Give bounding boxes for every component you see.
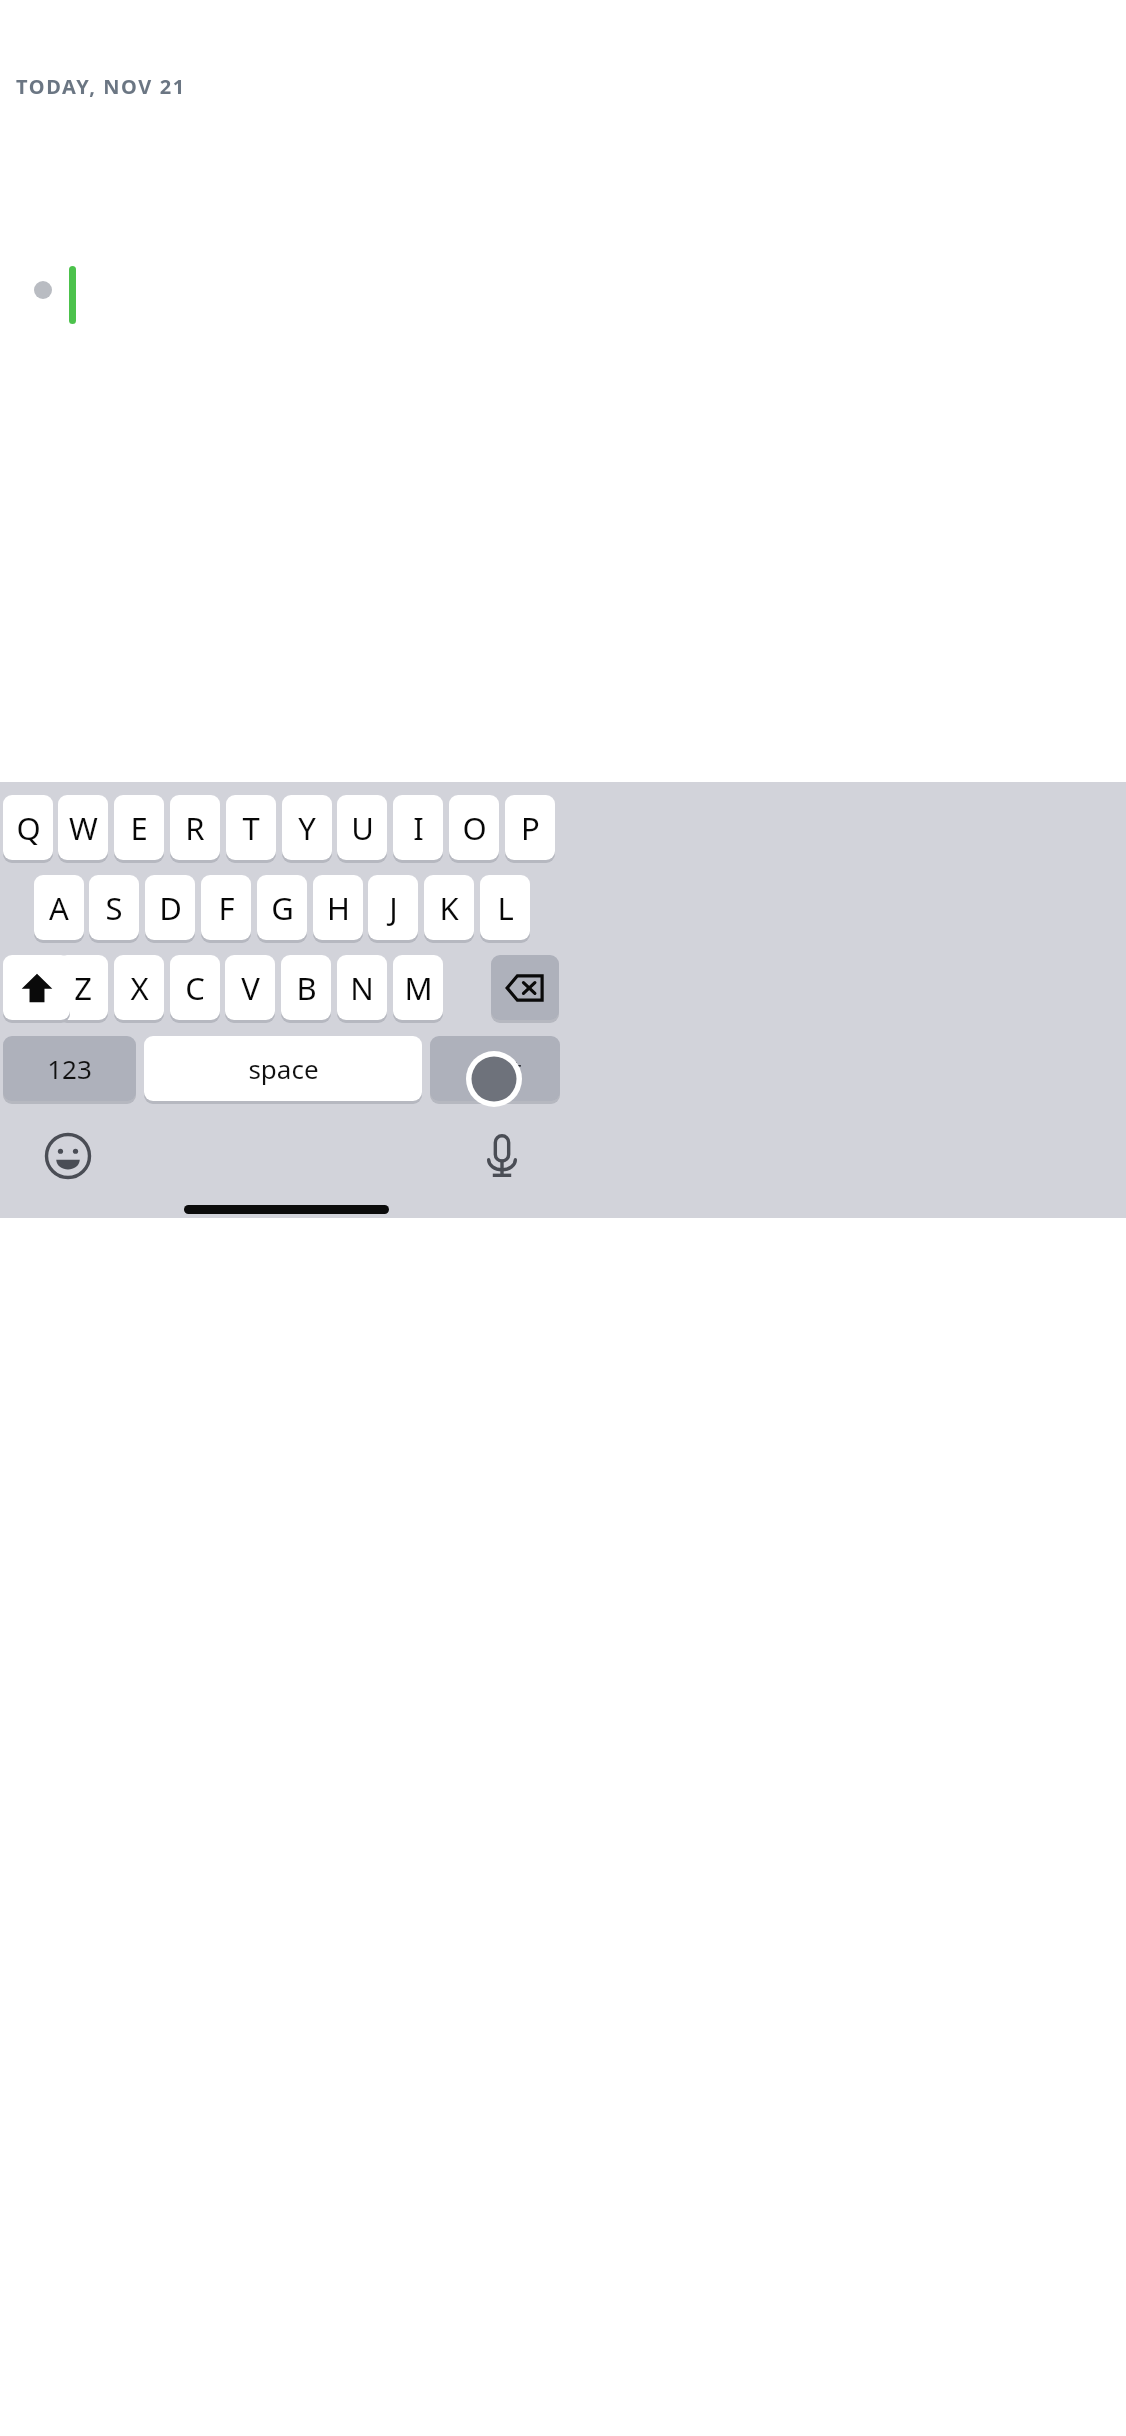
button[interactable]: C [170, 955, 220, 1020]
staticText: P [521, 807, 540, 849]
staticText: N [350, 967, 374, 1009]
button[interactable]: D [145, 875, 195, 940]
button[interactable]: E [114, 795, 164, 860]
button[interactable]: Z [58, 955, 108, 1020]
button[interactable]: K [424, 875, 474, 940]
staticText: E [130, 807, 148, 849]
button[interactable]: H [313, 875, 363, 940]
staticText: H [327, 887, 350, 929]
staticText: L [497, 887, 514, 929]
button[interactable]: O [449, 795, 499, 860]
button[interactable]: I [393, 795, 443, 860]
button[interactable]: N [337, 955, 387, 1020]
button[interactable]: F [201, 875, 251, 940]
staticText: G [271, 887, 294, 929]
button[interactable]: Voice input [472, 1126, 532, 1186]
staticText: S [105, 887, 123, 929]
button[interactable]: W [58, 795, 108, 860]
other: Energy [62, 920, 96, 954]
staticText: A [49, 887, 69, 929]
button[interactable]: V [225, 955, 275, 1020]
button[interactable]: J [368, 875, 418, 940]
button[interactable]: Cancel [524, 908, 671, 981]
button[interactable]: 123 [3, 1036, 136, 1101]
staticText: X [130, 967, 149, 1009]
staticText: T [242, 807, 260, 849]
button[interactable]: P [505, 795, 555, 860]
staticText: next [468, 1051, 522, 1086]
staticText: space [248, 1051, 319, 1086]
button[interactable]: L [480, 875, 530, 940]
button[interactable]: 0 [22, 910, 106, 963]
staticText: U [351, 807, 374, 849]
button[interactable]: A [34, 875, 84, 940]
button[interactable]: Y [282, 795, 332, 860]
button[interactable]: Q [3, 795, 53, 860]
staticText: V [241, 967, 260, 1009]
staticText: D [159, 887, 182, 929]
button[interactable]: space [144, 1036, 422, 1101]
staticText: C [185, 967, 205, 1009]
staticText: Cancel [546, 922, 649, 967]
button[interactable]: Emoji [38, 1126, 98, 1186]
staticText: M [404, 967, 433, 1009]
staticText: W [69, 807, 98, 849]
button[interactable]: Shift [3, 955, 70, 1020]
button[interactable]: Done [250, 896, 347, 949]
staticText: Z [74, 967, 92, 1009]
button[interactable]: T [226, 795, 276, 860]
button[interactable]: U [337, 795, 387, 860]
staticText: R [185, 807, 205, 849]
staticText: Q [16, 807, 41, 849]
button[interactable]: next [430, 1036, 560, 1101]
button[interactable]: M [393, 955, 443, 1020]
button[interactable]: X [114, 955, 164, 1020]
button[interactable]: B [281, 955, 331, 1020]
staticText: Done [259, 902, 338, 943]
staticText: K [439, 887, 459, 929]
staticText: F [218, 887, 235, 929]
staticText: TODAY, NOV 21 [16, 73, 186, 100]
staticText: 0 [32, 916, 50, 957]
staticText: I [413, 807, 424, 849]
button[interactable]: R [170, 795, 220, 860]
button[interactable]: Backspace [491, 955, 559, 1020]
button[interactable]: G [257, 875, 307, 940]
staticText: O [462, 807, 487, 849]
staticText: J [389, 887, 398, 929]
staticText: 123 [47, 1051, 92, 1086]
staticText: Y [298, 807, 316, 849]
button[interactable]: S [89, 875, 139, 940]
staticText: B [296, 967, 317, 1009]
